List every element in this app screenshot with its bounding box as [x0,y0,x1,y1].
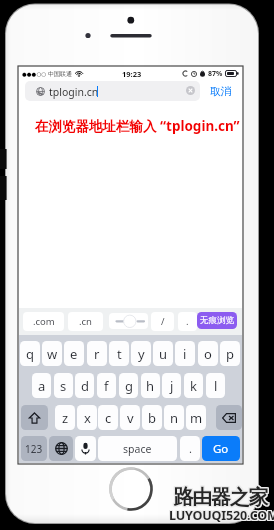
button[interactable]: u [153,341,173,366]
button[interactable]: g [119,373,138,398]
button[interactable]: .cn [68,312,103,331]
staticText: 取消 [210,85,232,99]
staticText: 无痕浏览 [200,315,234,326]
button[interactable]: y [131,341,151,366]
button[interactable]: Dictate [75,436,96,461]
button[interactable]: b [142,405,162,430]
button[interactable]: Dash options [109,313,148,329]
button[interactable]: i [175,341,195,366]
button[interactable]: k [184,373,203,398]
staticText: n [170,409,179,427]
button[interactable]: c [98,405,118,430]
staticText: a [38,377,46,395]
staticText: LUYOUQI520.COM [169,506,274,523]
staticText: z [62,409,69,427]
staticText: b [148,409,156,427]
staticText: / [161,315,165,328]
staticText: t [117,345,122,363]
button[interactable]: 123 [21,436,47,461]
button[interactable]: j [162,373,181,398]
button[interactable]: d [75,373,94,398]
button[interactable]: w [42,341,62,366]
staticText: f [104,377,109,395]
staticText: . [189,441,192,456]
button[interactable]: v [120,405,140,430]
staticText: 路由器之家 [174,485,268,510]
button[interactable]: s [54,373,73,398]
staticText: LUYOUQI520.COM [170,507,274,524]
staticText: LUYOUQI520.COM [168,508,274,525]
staticText: c [105,409,112,427]
staticText: .cn [79,315,92,328]
staticText: o [204,345,212,363]
button[interactable]: z [55,405,75,430]
staticText: 路由器之家 [175,486,269,511]
button[interactable]: . [178,312,197,331]
staticText: d [81,377,89,395]
staticText: y [138,345,145,363]
button[interactable]: Shift [21,405,48,430]
staticText: tplogin.cn [49,85,99,99]
button[interactable]: . [180,436,200,461]
staticText: k [190,377,197,395]
staticText: 中国联通 [48,70,72,78]
staticText: .com [33,315,55,328]
staticText: 路由器之家 [173,484,267,509]
staticText: 87% [208,69,223,79]
staticText: g [125,377,133,395]
staticText: LUYOUQI520.COM [170,506,274,523]
staticText: LUYOUQI520.COM [170,508,274,525]
staticText: w [47,345,58,363]
button[interactable]: t [109,341,129,366]
staticText: LUYOUQI520.COM [169,508,274,525]
button[interactable]: h [141,373,160,398]
staticText: j [170,377,174,395]
staticText: 路由器之家 [174,486,268,511]
button[interactable]: .com [23,312,64,331]
button[interactable]: 取消 [205,84,236,99]
button[interactable]: q [20,341,40,366]
staticText: u [159,345,168,363]
staticText: 123 [25,442,43,456]
staticText: 路由器之家 [174,484,268,509]
button[interactable]: 无痕浏览 [197,312,237,329]
button[interactable]: Backspace [216,405,242,430]
staticText: LUYOUQI520.COM [168,507,274,524]
staticText: h [146,377,155,395]
staticText: i [183,345,187,363]
staticText: ●●●○○ [22,71,46,77]
button[interactable]: n [164,405,184,430]
staticText: x [84,409,91,427]
staticText: . [186,315,189,328]
staticText: q [26,345,34,363]
staticText: r [94,345,100,363]
button[interactable]: m [186,405,206,430]
button[interactable]: f [97,373,116,398]
staticText: p [226,345,234,363]
staticText: LUYOUQI520.COM [168,506,274,523]
staticText: s [60,377,67,395]
staticText: 路由器之家 [175,484,269,509]
button[interactable]: x [77,405,97,430]
button[interactable]: / [151,312,174,331]
button[interactable]: o [198,341,218,366]
staticText: 路由器之家 [173,485,267,510]
staticText: 路由器之家 [173,486,267,511]
button[interactable]: space [98,436,177,461]
button[interactable]: Switch keyboard [49,436,73,461]
staticText: Go [213,441,229,457]
button[interactable]: Clear text [186,86,195,95]
staticText: m [190,409,203,427]
button[interactable]: Go [202,436,240,461]
button[interactable] [25,81,200,101]
staticText: 19:23 [122,69,142,79]
staticText: v [127,409,134,427]
button[interactable]: a [32,373,51,398]
button[interactable]: r [87,341,107,366]
button[interactable]: p [220,341,240,366]
staticText: space [123,442,152,456]
staticText: e [70,345,78,363]
button[interactable]: e [64,341,84,366]
staticText: LUYOUQI520.COM [169,507,274,524]
button[interactable]: l [206,373,225,398]
